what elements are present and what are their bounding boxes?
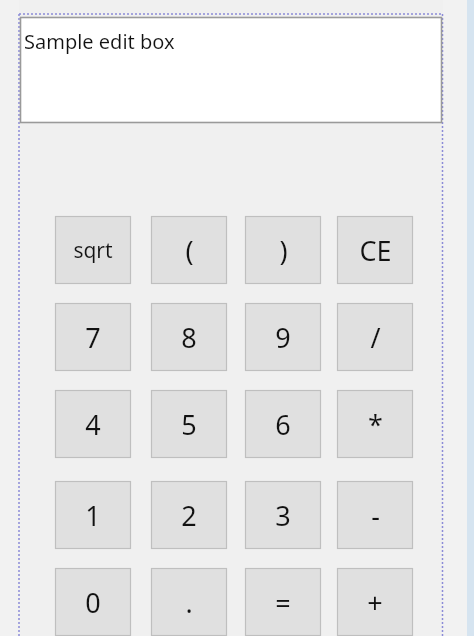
staticText: - (371, 497, 380, 534)
button[interactable]: 6 (245, 390, 321, 458)
button[interactable]: 7 (55, 303, 131, 371)
button[interactable]: 2 (151, 481, 227, 549)
button[interactable]: / (337, 303, 413, 371)
staticText: 2 (181, 497, 197, 534)
button[interactable]: 9 (245, 303, 321, 371)
button[interactable]: ( (151, 216, 227, 284)
staticText: / (370, 319, 381, 356)
staticText: 4 (85, 406, 101, 443)
button[interactable]: 3 (245, 481, 321, 549)
staticText: 1 (85, 497, 101, 534)
staticText: 8 (181, 319, 197, 356)
staticText: 6 (275, 406, 291, 443)
button[interactable]: 4 (55, 390, 131, 458)
button[interactable]: Sample edit box (20, 17, 442, 123)
staticText: . (185, 584, 193, 621)
button[interactable]: 1 (55, 481, 131, 549)
staticText: 7 (85, 319, 101, 356)
button[interactable]: 0 (55, 568, 131, 636)
staticText: sqrt (73, 236, 113, 265)
button[interactable]: * (337, 390, 413, 458)
staticText: = (275, 584, 291, 621)
staticText: Sample edit box (24, 28, 175, 55)
staticText: ) (279, 232, 288, 269)
button[interactable]: . (151, 568, 227, 636)
button[interactable]: + (337, 568, 413, 636)
staticText: 9 (275, 319, 291, 356)
button[interactable]: - (337, 481, 413, 549)
staticText: + (367, 584, 383, 621)
button[interactable]: sqrt (55, 216, 131, 284)
staticText: 3 (275, 497, 291, 534)
button[interactable]: CE (337, 216, 413, 284)
staticText: CE (359, 232, 392, 269)
button[interactable]: 5 (151, 390, 227, 458)
button[interactable]: ) (245, 216, 321, 284)
staticText: * (368, 406, 383, 443)
staticText: ( (185, 232, 194, 269)
staticText: 0 (85, 584, 101, 621)
staticText: 5 (181, 406, 197, 443)
button[interactable]: = (245, 568, 321, 636)
button[interactable]: 8 (151, 303, 227, 371)
